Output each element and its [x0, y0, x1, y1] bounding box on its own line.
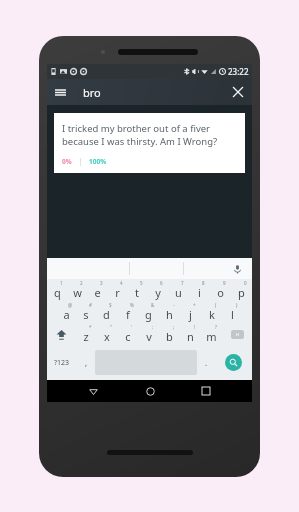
staticText: @: [68, 302, 73, 308]
staticText: .: [205, 357, 208, 368]
button[interactable]: @: [56, 301, 76, 323]
staticText: ': [131, 324, 133, 330]
staticText: ,: [85, 357, 88, 368]
staticText: p: [238, 285, 245, 300]
staticText: s: [83, 307, 89, 322]
staticText: h: [166, 307, 173, 322]
staticText: l: [231, 307, 234, 322]
staticText: u: [175, 285, 182, 300]
staticText: f: [126, 307, 130, 322]
button[interactable]: Recents: [195, 380, 217, 402]
staticText: #: [89, 302, 92, 308]
staticText: ?: [215, 324, 217, 330]
button[interactable]: (: [201, 301, 222, 323]
staticText: ?123: [54, 358, 70, 368]
staticText: 0: [244, 280, 247, 286]
staticText: e: [94, 285, 101, 300]
button[interactable]: 0: [231, 279, 252, 301]
button[interactable]: !: [180, 323, 201, 345]
button[interactable]: ?123: [47, 345, 77, 380]
button[interactable]: 7: [168, 279, 189, 301]
staticText: 2: [80, 280, 83, 286]
staticText: I tricked my brother out of a fiver beca…: [62, 122, 237, 148]
staticText: 23:22: [228, 66, 249, 77]
staticText: z: [83, 329, 89, 344]
staticText: w: [73, 285, 82, 300]
staticText: o: [217, 285, 224, 300]
staticText: ): [236, 302, 238, 308]
staticText: 1: [60, 280, 63, 286]
button[interactable]: 8: [189, 279, 210, 301]
button[interactable]: 5: [127, 279, 147, 301]
button[interactable]: :: [138, 323, 159, 345]
staticText: t: [135, 285, 139, 300]
button[interactable]: 9: [210, 279, 231, 301]
button[interactable]: $: [96, 301, 117, 323]
button[interactable]: Close: [228, 82, 248, 102]
staticText: ": [110, 324, 112, 330]
staticText: x: [104, 329, 110, 344]
staticText: 7: [181, 280, 184, 286]
staticText: (: [215, 302, 217, 308]
staticText: 5: [140, 280, 143, 286]
staticText: +: [193, 302, 196, 308]
staticText: 3: [100, 280, 103, 286]
button[interactable]: 6: [147, 279, 168, 301]
staticText: !: [194, 324, 196, 330]
button[interactable]: Back: [82, 380, 104, 402]
staticText: q: [54, 285, 61, 300]
button[interactable]: -: [159, 301, 180, 323]
staticText: c: [125, 329, 131, 344]
staticText: b: [166, 329, 173, 344]
staticText: &: [151, 302, 155, 308]
button[interactable]: Search: [215, 345, 252, 380]
button[interactable]: *: [76, 323, 96, 345]
staticText: :: [152, 324, 154, 330]
button[interactable]: Period: [197, 345, 215, 380]
button[interactable]: 2: [67, 279, 87, 301]
button[interactable]: Voice input: [228, 260, 246, 278]
staticText: j: [189, 307, 192, 322]
staticText: i: [198, 285, 201, 300]
button[interactable]: +: [180, 301, 201, 323]
staticText: a: [63, 307, 70, 322]
staticText: y: [155, 285, 161, 300]
button[interactable]: Home: [139, 380, 161, 402]
button[interactable]: Delete: [222, 323, 252, 345]
staticText: ;: [173, 324, 175, 330]
button[interactable]: Comma: [77, 345, 95, 380]
staticText: 4: [120, 280, 123, 286]
button[interactable]: &: [138, 301, 159, 323]
staticText: d: [103, 307, 110, 322]
staticText: n: [187, 329, 194, 344]
button[interactable]: #: [76, 301, 96, 323]
staticText: r: [115, 285, 120, 300]
staticText: 0%: [62, 157, 72, 166]
staticText: v: [146, 329, 152, 344]
staticText: k: [209, 307, 215, 322]
staticText: 6: [160, 280, 163, 286]
button[interactable]: Shift: [47, 323, 76, 345]
button[interactable]: ;: [159, 323, 180, 345]
staticText: bro: [83, 85, 101, 100]
button[interactable]: ): [222, 301, 243, 323]
button[interactable]: 3: [87, 279, 107, 301]
button[interactable]: ': [117, 323, 138, 345]
button[interactable]: %: [117, 301, 138, 323]
button[interactable]: Menu: [50, 82, 70, 102]
button[interactable]: I tricked my brother out of a fiver beca…: [54, 113, 245, 173]
button[interactable]: ?: [201, 323, 222, 345]
staticText: 9: [223, 280, 226, 286]
staticText: -: [173, 302, 175, 308]
staticText: g: [145, 307, 152, 322]
staticText: $: [109, 302, 112, 308]
staticText: %: [130, 302, 134, 308]
staticText: 100%: [89, 157, 107, 166]
staticText: 8: [202, 280, 205, 286]
staticText: *: [89, 324, 92, 330]
button[interactable]: 4: [107, 279, 127, 301]
button[interactable]: ": [96, 323, 117, 345]
button[interactable]: 1: [47, 279, 67, 301]
staticText: m: [206, 329, 217, 344]
